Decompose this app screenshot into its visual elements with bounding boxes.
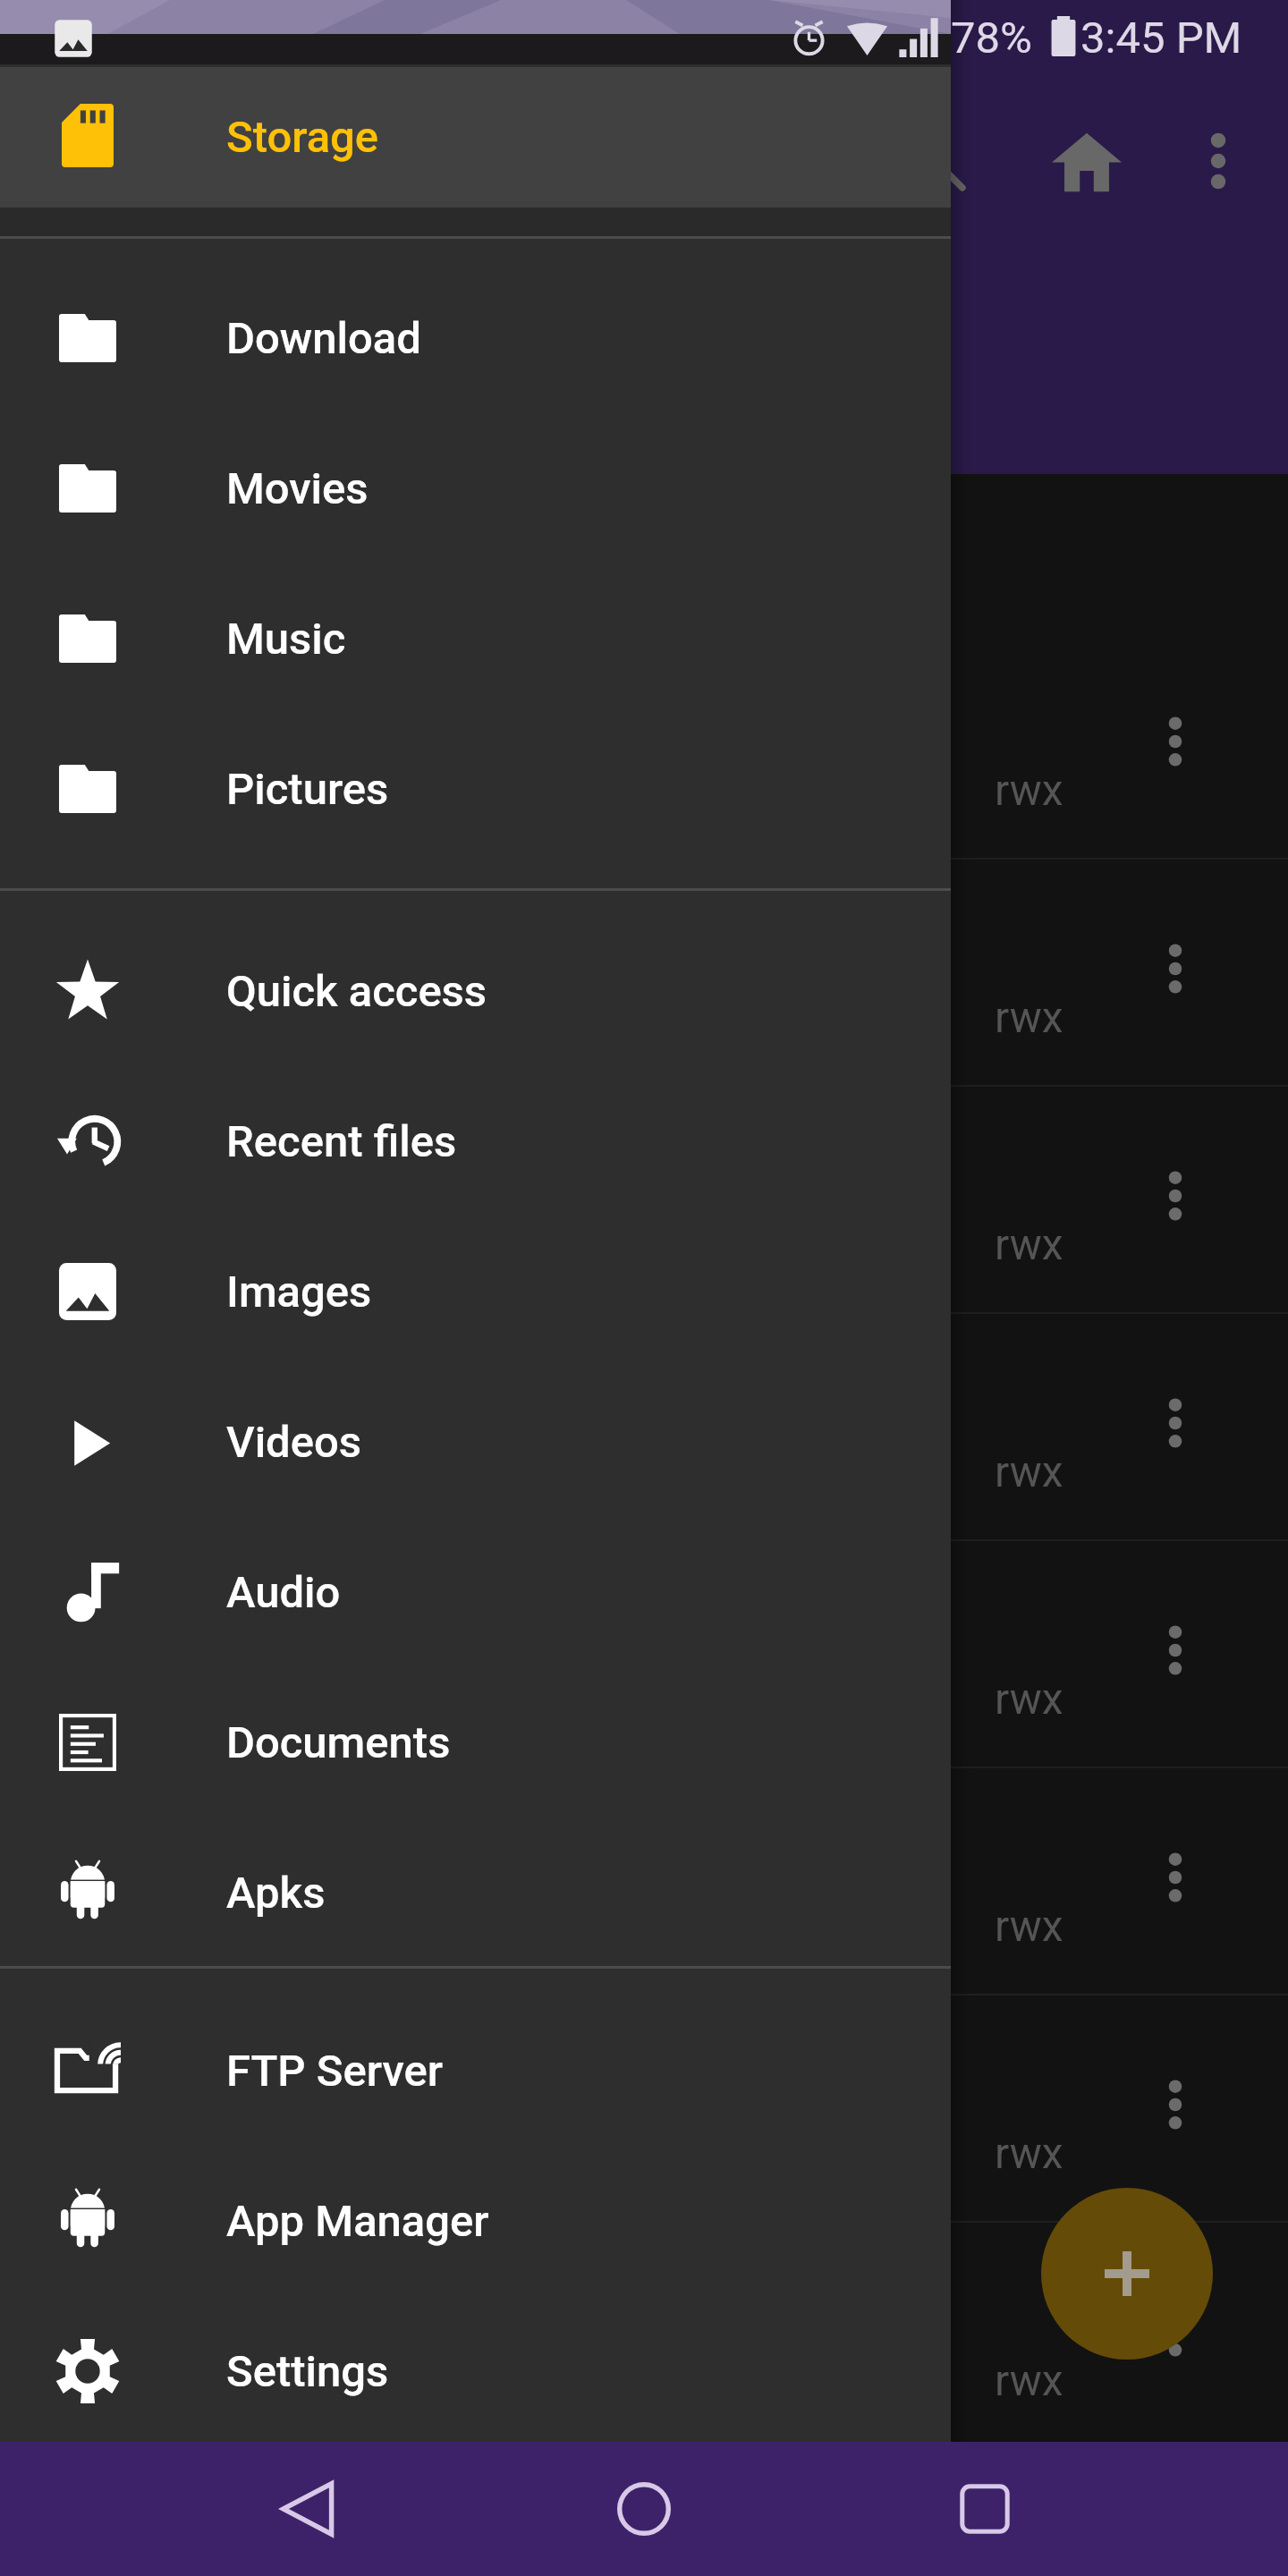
button[interactable]: rwx — [0, 632, 1288, 860]
button[interactable]: rwx — [0, 860, 1288, 1087]
staticText: Images — [226, 1267, 372, 1318]
button[interactable]: Item options — [1122, 2051, 1229, 2158]
button[interactable]: Recents — [936, 2460, 1034, 2558]
staticText: rwx — [995, 765, 1063, 815]
button[interactable]: Item options — [1122, 915, 1229, 1022]
staticText: rwx — [995, 1219, 1063, 1269]
staticText: 78% — [951, 13, 1032, 64]
staticText: FTP Server — [226, 2046, 444, 2097]
button[interactable]: rwx — [0, 1087, 1288, 1314]
staticText: Download — [226, 313, 421, 364]
staticText: Audio — [226, 1567, 341, 1618]
button[interactable]: rwx — [0, 1314, 1288, 1541]
button[interactable]: Download — [0, 263, 951, 413]
staticText: Quick access — [226, 966, 487, 1017]
button[interactable]: Documents — [0, 1667, 951, 1818]
button[interactable]: Images — [0, 1216, 951, 1367]
button[interactable]: Storage — [0, 67, 951, 208]
button[interactable]: Home — [1033, 107, 1140, 215]
staticText: Settings — [226, 2346, 389, 2397]
button[interactable]: Search — [880, 106, 987, 213]
button[interactable]: Pictures — [0, 714, 951, 864]
staticText: rwx — [995, 992, 1063, 1042]
button[interactable]: Item options — [1122, 688, 1229, 795]
button[interactable]: Item options — [1122, 1142, 1229, 1250]
button[interactable]: Item options — [1122, 2278, 1229, 2385]
button[interactable]: Item options — [1122, 1597, 1229, 1704]
button[interactable]: Settings — [0, 2296, 951, 2446]
button[interactable]: Movies — [0, 413, 951, 563]
staticText: Videos — [226, 1417, 361, 1468]
staticText: rwx — [995, 2128, 1063, 2178]
button[interactable]: FTP Server — [0, 1996, 951, 2146]
staticText: Music — [226, 614, 346, 665]
button[interactable]: rwx — [0, 2223, 1288, 2442]
button[interactable]: More options — [1165, 107, 1272, 215]
staticText: Pictures — [226, 764, 389, 815]
staticText: rwx — [995, 1901, 1063, 1951]
button[interactable]: Back — [259, 2460, 358, 2558]
button[interactable]: App Manager — [0, 2146, 951, 2296]
staticText: Documents — [226, 1717, 451, 1768]
button[interactable]: Item options — [1122, 1824, 1229, 1931]
button[interactable]: Apks — [0, 1818, 951, 1968]
button[interactable]: Quick access — [0, 916, 951, 1066]
button[interactable]: Audio — [0, 1517, 951, 1667]
button[interactable]: Recent files — [0, 1066, 951, 1216]
button[interactable]: Add — [1041, 2188, 1213, 2360]
staticText: App Manager — [226, 2196, 489, 2247]
staticText: Apks — [226, 1868, 326, 1919]
button[interactable]: rwx — [0, 1768, 1288, 1996]
button[interactable]: Home — [595, 2460, 693, 2558]
staticText: rwx — [995, 1674, 1063, 1724]
staticText: Recent files — [226, 1116, 457, 1167]
button[interactable]: rwx — [0, 1996, 1288, 2223]
staticText: rwx — [995, 2355, 1063, 2405]
staticText: Storage — [226, 112, 379, 163]
staticText: rwx — [995, 1446, 1063, 1496]
staticText: 3:45 PM — [1080, 13, 1242, 64]
button[interactable]: Videos — [0, 1367, 951, 1517]
button[interactable]: Item options — [1122, 1369, 1229, 1477]
staticText: Movies — [226, 463, 369, 514]
button[interactable]: rwx — [0, 1541, 1288, 1768]
button[interactable]: Music — [0, 563, 951, 714]
